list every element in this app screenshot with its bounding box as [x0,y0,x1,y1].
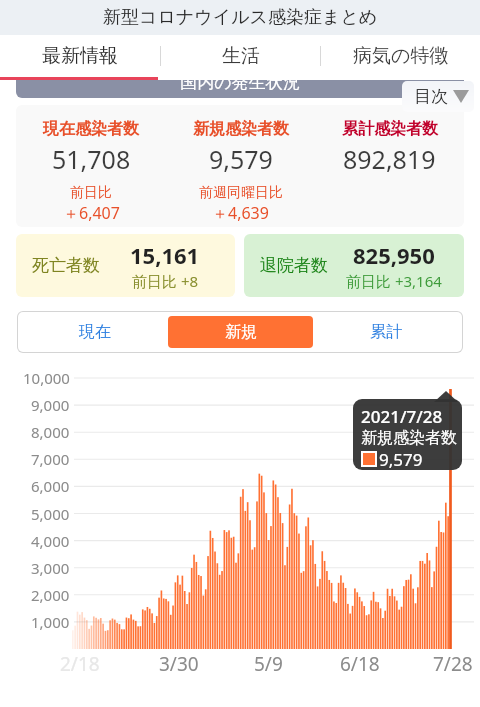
staticText: 892,819 [343,142,436,176]
staticText: 新規感染者数 [361,428,457,448]
staticText: 新規 [225,322,257,342]
staticText: 6,000 [31,476,70,496]
button[interactable]: 死亡者数 [16,234,235,297]
button[interactable]: 新規 [168,316,313,348]
staticText: 825,950 [353,240,435,270]
staticText: 2,000 [31,585,70,605]
staticText: 累計 [370,322,402,342]
button[interactable]: 目次 [402,81,474,112]
button[interactable]: 現在 [22,316,168,348]
staticText: 2021/7/28 [361,405,443,428]
staticText: 3/30 [159,651,199,673]
staticText: 現在 [79,322,111,342]
staticText: 4,000 [31,531,70,551]
button[interactable]: 現在感染者数 [16,105,166,227]
button[interactable]: 新規感染者数 [166,105,315,227]
button[interactable]: 最新情報 [0,35,160,77]
staticText: 5,000 [31,504,70,524]
button[interactable]: 累計 [313,316,458,348]
staticText: 国内の発生状況 [16,80,464,90]
staticText: 1,000 [31,612,70,632]
staticText: 前日比 +8 [132,271,199,291]
staticText: 新規感染者数 [193,119,289,139]
staticText: 7/28 [433,651,473,673]
staticText: 目次 [414,86,448,107]
button[interactable]: 累計感染者数 [315,105,464,227]
staticText: 2/18 [60,651,100,673]
staticText: 3,000 [31,558,70,578]
staticText: 9,579 [379,448,423,470]
staticText: 新型コロナウイルス感染症まとめ [103,6,378,29]
staticText: 現在感染者数 [43,119,139,139]
staticText: 前日比 +3,164 [346,271,442,291]
staticText: 前週同曜日比 [199,184,283,202]
staticText: 死亡者数 [32,255,100,276]
staticText: 生活 [222,44,260,68]
staticText: 最新情報 [42,44,118,68]
staticText: 51,708 [52,142,131,176]
staticText: 6/18 [340,651,380,673]
staticText: 5/9 [254,651,283,673]
staticText: 9,000 [31,395,70,415]
staticText: 10,000 [23,368,70,388]
staticText: 7,000 [31,449,70,469]
staticText: ＋6,407 [63,202,120,224]
button[interactable]: 病気の特徴 [321,35,480,77]
staticText: 病気の特徴 [353,44,449,68]
button[interactable]: 退院者数 [244,234,464,297]
staticText: 退院者数 [260,255,328,276]
staticText: 前日比 [70,184,112,202]
staticText: 9,579 [209,142,273,176]
staticText: 8,000 [31,422,70,442]
staticText: 15,161 [130,240,200,270]
staticText: ＋4,639 [212,202,269,224]
staticText: 累計感染者数 [342,119,438,139]
button[interactable]: 生活 [161,35,320,77]
button[interactable]: 国内の発生状況 [16,80,464,98]
